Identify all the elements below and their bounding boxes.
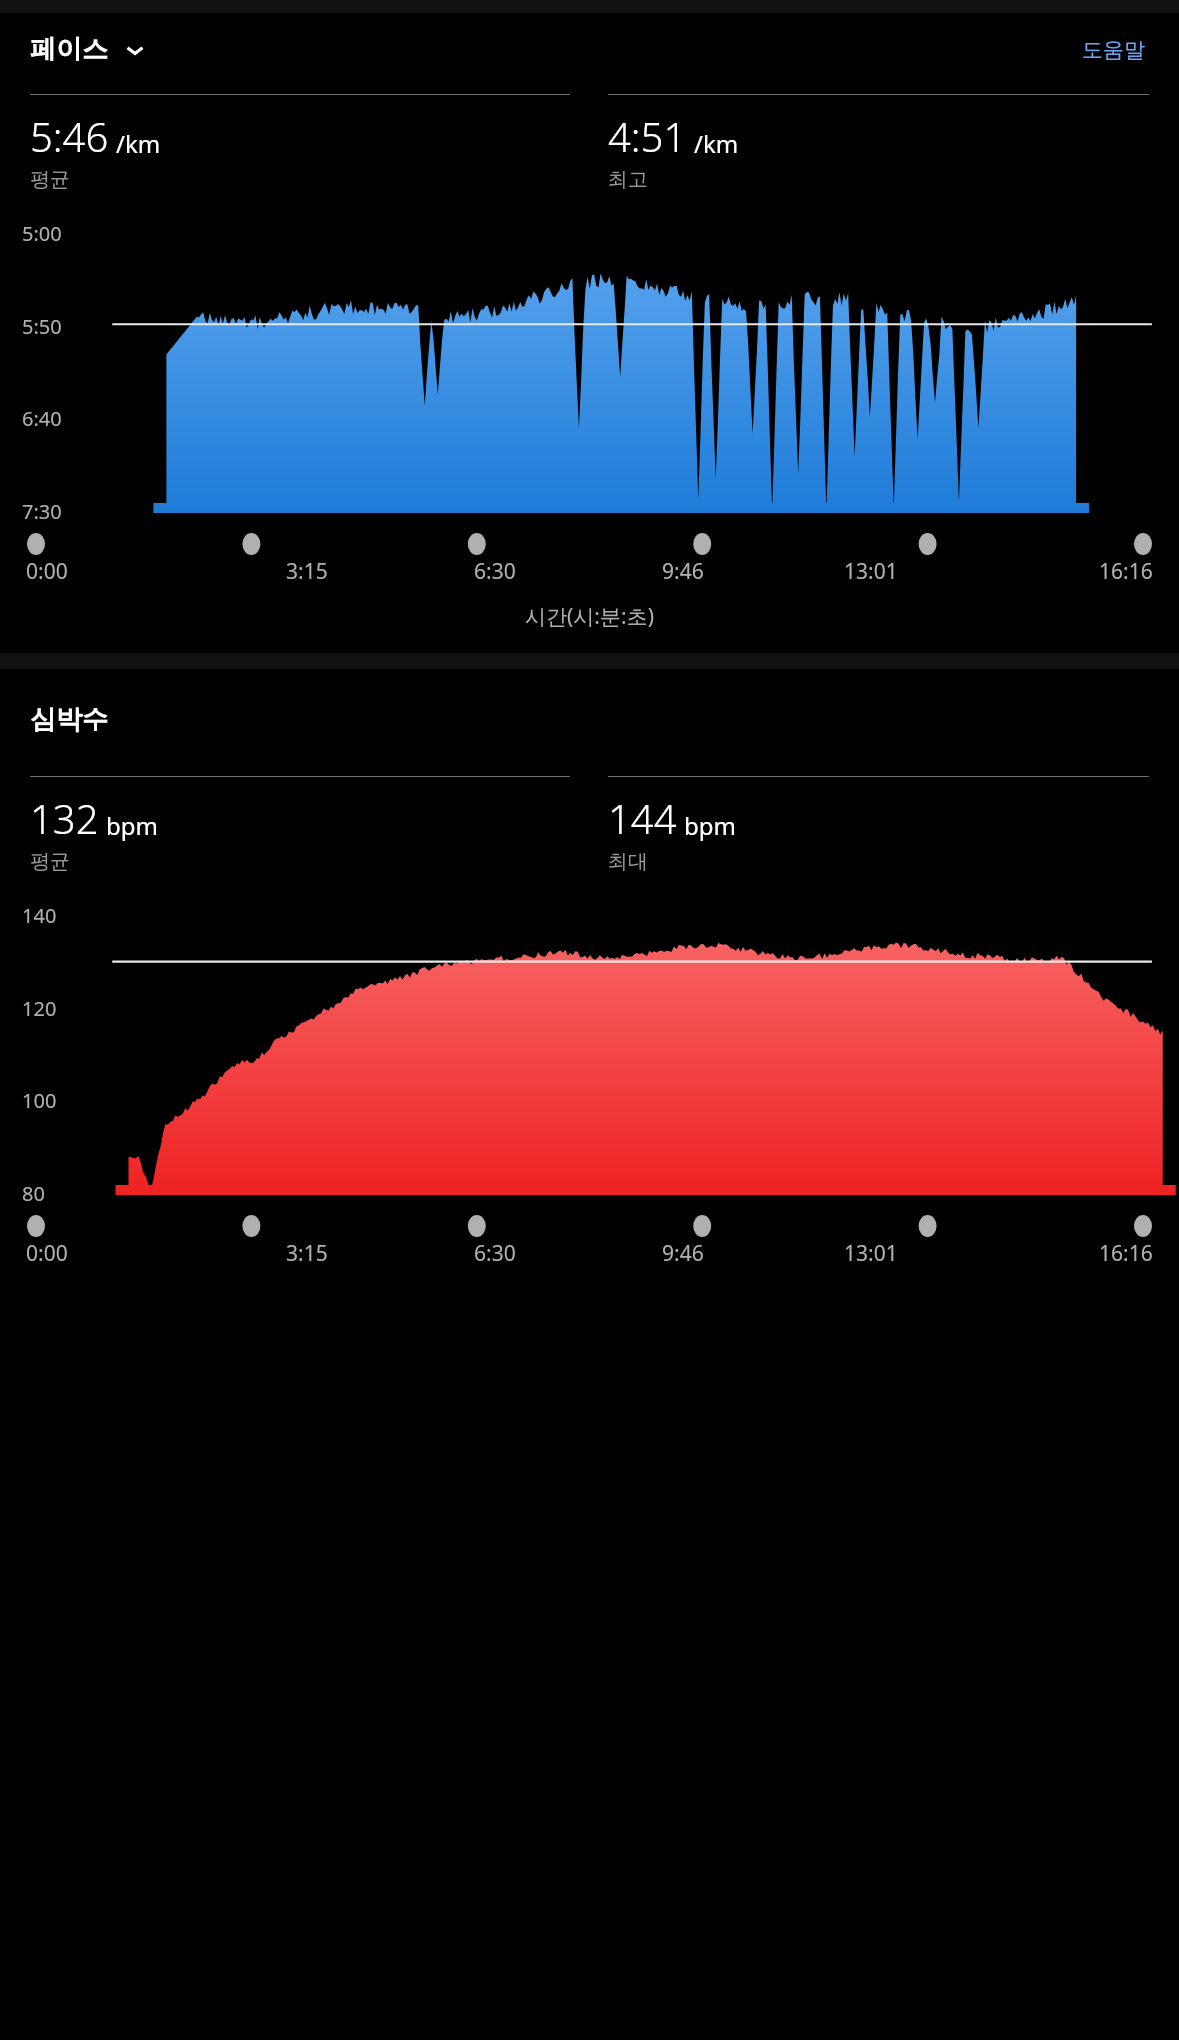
button[interactable]: 132 [30, 776, 570, 874]
staticText: 16:16 [1099, 1239, 1153, 1268]
staticText: 5:00 [22, 220, 62, 247]
staticText: bpm [106, 809, 158, 842]
staticText: 0:00 [26, 1239, 68, 1268]
staticText: 도움말 [1082, 37, 1145, 63]
staticText: 16:16 [1099, 557, 1153, 586]
staticText: 140 [22, 902, 57, 929]
staticText: 페이스 [30, 33, 108, 66]
staticText: 3:15 [286, 557, 328, 586]
staticText: 13:01 [844, 557, 898, 586]
staticText: 최고 [608, 167, 648, 192]
staticText: 100 [22, 1087, 57, 1114]
staticText: 132 [30, 791, 99, 845]
staticText: 3:15 [286, 1239, 328, 1268]
staticText: /km [694, 127, 739, 160]
staticText: 144 [608, 791, 677, 845]
staticText: 6:40 [22, 405, 62, 432]
staticText: bpm [684, 809, 736, 842]
staticText: 4:51 [608, 109, 687, 163]
staticText: 13:01 [844, 1239, 898, 1268]
staticText: /km [116, 127, 161, 160]
button[interactable]: 페이스 [30, 27, 146, 72]
staticText: 9:46 [662, 1239, 704, 1268]
staticText: 5:50 [22, 313, 62, 340]
staticText: 0:00 [26, 557, 68, 586]
button[interactable]: 심박수 [0, 699, 138, 740]
button[interactable]: 4:51 [608, 94, 1149, 192]
staticText: 5:46 [30, 109, 109, 163]
staticText: 시간(시:분:초) [0, 602, 1179, 631]
staticText: 7:30 [22, 498, 62, 525]
staticText: 120 [22, 995, 57, 1022]
staticText: 평균 [30, 167, 70, 192]
button[interactable]: 5:46 [30, 94, 570, 192]
staticText: 6:30 [474, 557, 516, 586]
staticText: 심박수 [30, 703, 108, 736]
staticText: 6:30 [474, 1239, 516, 1268]
staticText: 80 [22, 1180, 45, 1207]
staticText: 최대 [608, 849, 648, 874]
button[interactable]: 144 [608, 776, 1149, 874]
staticText: 평균 [30, 849, 70, 874]
staticText: 9:46 [662, 557, 704, 586]
button[interactable]: 도움말 [1076, 31, 1151, 69]
